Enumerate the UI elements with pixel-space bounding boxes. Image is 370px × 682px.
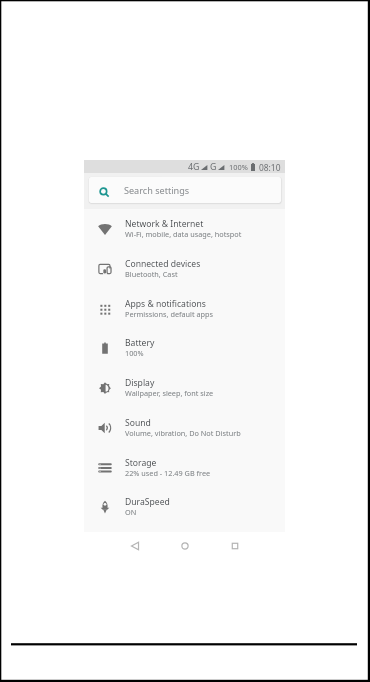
staticText: Connected devices (125, 258, 201, 270)
staticText: Wallpaper, sleep, font size (125, 388, 214, 398)
staticText: Apps & notifications (125, 298, 206, 310)
button[interactable]: Battery (84, 328, 285, 367)
button[interactable]: Apps & notifications (84, 289, 285, 328)
staticText: 22% used - 12.49 GB free (125, 468, 211, 478)
staticText: Network & Internet (125, 218, 204, 230)
staticText: Battery (125, 337, 155, 349)
staticText: Storage (125, 457, 157, 469)
staticText: Volume, vibration, Do Not Disturb (125, 428, 241, 438)
staticText: Display (125, 377, 155, 389)
button[interactable]: DuraSpeed (84, 487, 285, 526)
staticText: Wi-Fi, mobile, data usage, hotspot (125, 229, 242, 239)
staticText: Sound (125, 417, 151, 429)
staticText: ON (125, 507, 137, 517)
staticText: 08:10 (259, 162, 281, 173)
button[interactable]: Display (84, 368, 285, 407)
button[interactable]: Recents (223, 534, 247, 558)
button[interactable]: Storage (84, 448, 285, 487)
staticText: 100% (229, 162, 248, 172)
button[interactable]: Back (123, 534, 147, 558)
other: Search (99, 187, 110, 198)
button[interactable]: Search (89, 177, 281, 203)
staticText: 4G (188, 161, 200, 173)
button[interactable]: Network & Internet (84, 209, 285, 248)
button[interactable]: Connected devices (84, 249, 285, 288)
staticText: Permissions, default apps (125, 309, 214, 319)
button[interactable]: Home (173, 534, 197, 558)
staticText: Bluetooth, Cast (125, 269, 178, 279)
staticText: 100% (125, 348, 144, 358)
staticText: G (210, 161, 217, 173)
staticText: Search settings (124, 184, 190, 196)
button[interactable]: Sound (84, 408, 285, 447)
staticText: DuraSpeed (125, 496, 170, 508)
